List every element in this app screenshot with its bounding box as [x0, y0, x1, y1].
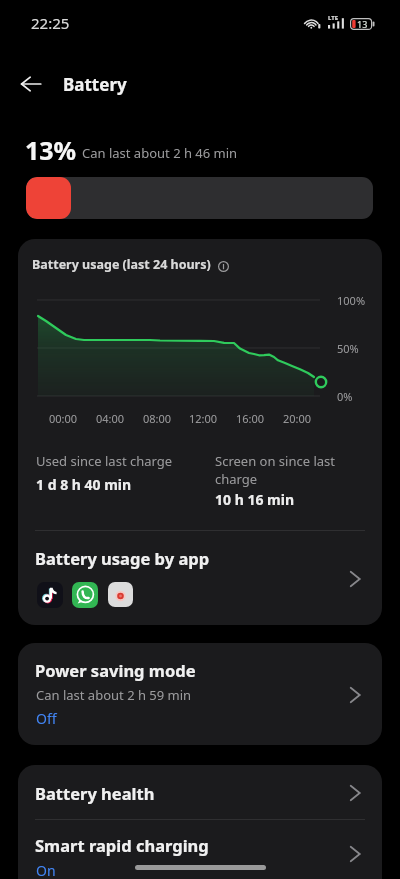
staticText: 08:00	[143, 411, 172, 426]
button[interactable]: Battery health	[18, 765, 382, 819]
staticText: 100%	[337, 293, 366, 308]
staticText: Battery usage by app	[35, 547, 210, 569]
staticText: Screen on since last charge	[215, 452, 335, 488]
staticText: Smart rapid charging	[35, 834, 209, 856]
staticText: 12:00	[189, 411, 218, 426]
staticText: 13%	[25, 133, 77, 167]
staticText: 50%	[337, 341, 359, 356]
staticText: 13	[357, 18, 368, 30]
staticText: 0%	[337, 389, 353, 404]
staticText: Can last about 2 h 46 min	[82, 144, 238, 162]
staticText: 00:00	[49, 411, 78, 426]
staticText: Battery health	[35, 782, 155, 804]
staticText: 22:25	[31, 13, 70, 33]
staticText: Battery usage (last 24 hours)	[32, 256, 211, 273]
staticText: Can last about 2 h 59 min	[36, 686, 192, 704]
staticText: LTE	[328, 14, 339, 22]
staticText: 16:00	[236, 411, 265, 426]
staticText: Off	[36, 709, 57, 728]
button[interactable]: Back	[7, 60, 55, 108]
staticText: 10 h 16 min	[215, 490, 294, 509]
staticText: Battery	[63, 73, 127, 96]
staticText: 04:00	[96, 411, 125, 426]
button[interactable]: Power saving mode	[18, 643, 382, 745]
staticText: Power saving mode	[35, 659, 196, 681]
button[interactable]: Smart rapid charging	[18, 820, 382, 879]
staticText: On	[36, 861, 56, 879]
staticText: Used since last charge	[36, 452, 173, 470]
staticText: 1 d 8 h 40 min	[36, 475, 132, 494]
button[interactable]: Battery usage by app	[18, 536, 382, 625]
staticText: 20:00	[283, 411, 312, 426]
